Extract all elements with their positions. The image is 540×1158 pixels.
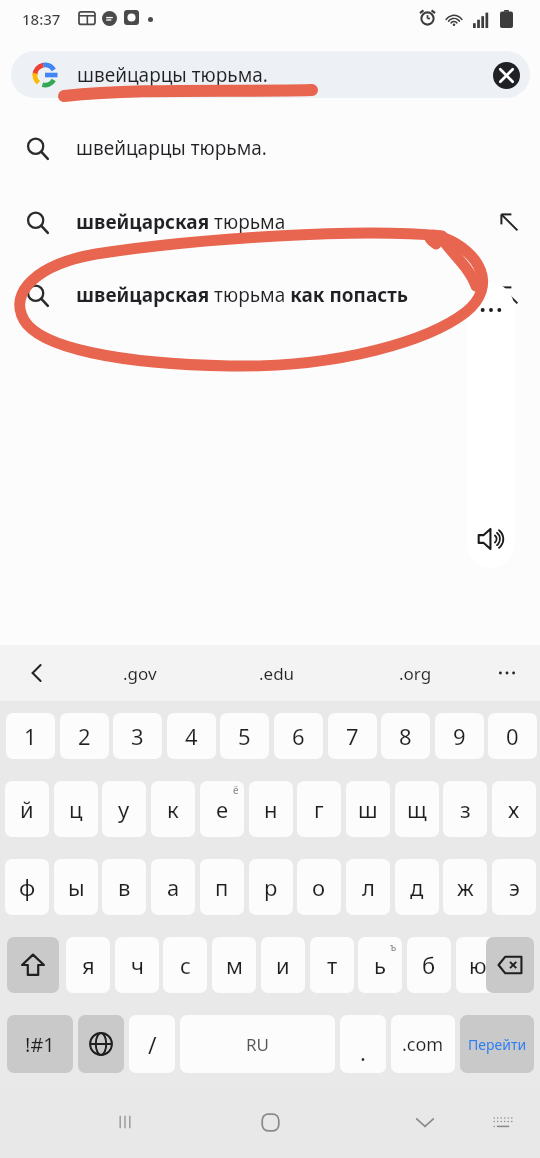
button[interactable]: 5 xyxy=(220,713,269,759)
staticText: ф xyxy=(19,872,36,902)
button[interactable]: More options xyxy=(467,283,514,568)
staticText: а xyxy=(167,872,180,902)
button[interactable]: е xyxy=(200,781,244,837)
button[interactable]: Insert suggestion xyxy=(492,205,526,239)
button[interactable]: Shift xyxy=(7,937,59,993)
button[interactable]: Backspace xyxy=(486,937,534,993)
staticText: !#1 xyxy=(25,1031,55,1058)
button[interactable]: 1 xyxy=(6,713,55,759)
button[interactable]: к xyxy=(151,781,195,837)
button[interactable]: Back xyxy=(12,645,62,701)
staticText: ы xyxy=(68,872,85,902)
button[interactable]: RU xyxy=(180,1015,335,1073)
button[interactable]: в xyxy=(102,859,146,915)
staticText: т xyxy=(327,950,338,980)
staticText: швейцарцы тюрьма. xyxy=(77,62,268,88)
staticText: р xyxy=(264,872,278,902)
staticText: 8 xyxy=(399,721,412,751)
staticText: .edu xyxy=(259,662,295,685)
button[interactable]: д xyxy=(395,859,439,915)
button[interactable]: Change language xyxy=(78,1015,124,1073)
button[interactable]: э xyxy=(492,859,536,915)
button[interactable]: ж xyxy=(443,859,487,915)
button[interactable]: Home xyxy=(245,1086,295,1158)
button[interactable]: ч xyxy=(115,937,159,993)
button[interactable]: Hide keyboard xyxy=(400,1086,450,1158)
button[interactable]: 8 xyxy=(381,713,430,759)
button[interactable]: швейцарцы тюрьма. xyxy=(11,51,530,98)
button[interactable]: More xyxy=(486,645,528,701)
button[interactable]: швейцарская тюрьма xyxy=(0,198,540,246)
staticText: к xyxy=(167,794,179,824)
button[interactable]: п xyxy=(200,859,244,915)
staticText: о xyxy=(312,872,326,902)
button[interactable]: ю xyxy=(456,937,500,993)
button[interactable]: Volume xyxy=(472,520,510,558)
button[interactable]: о xyxy=(297,859,341,915)
button[interactable]: 0 xyxy=(488,713,537,759)
button[interactable]: ь xyxy=(358,937,402,993)
button[interactable]: / xyxy=(129,1015,175,1073)
staticText: 1 xyxy=(24,721,37,751)
staticText: швейцарская тюрьма xyxy=(76,209,286,235)
staticText: в xyxy=(118,872,131,902)
button[interactable]: ы xyxy=(54,859,98,915)
staticText: э xyxy=(509,872,520,902)
staticText: .com xyxy=(402,1032,444,1057)
button[interactable]: р xyxy=(249,859,293,915)
button[interactable]: н xyxy=(249,781,293,837)
staticText: у xyxy=(118,794,130,824)
staticText: ё xyxy=(233,783,239,797)
staticText: щ xyxy=(407,794,427,824)
staticText: 18:37 xyxy=(22,9,61,29)
staticText: ш xyxy=(358,794,378,824)
button[interactable]: 7 xyxy=(328,713,377,759)
button[interactable]: й xyxy=(5,781,49,837)
button[interactable]: б xyxy=(407,937,451,993)
staticText: д xyxy=(410,872,424,902)
button[interactable]: .edu xyxy=(247,645,307,701)
button[interactable]: . xyxy=(340,1015,386,1073)
button[interactable]: у xyxy=(102,781,146,837)
staticText: 2 xyxy=(78,721,91,751)
button[interactable]: 2 xyxy=(60,713,109,759)
button[interactable]: щ xyxy=(395,781,439,837)
button[interactable]: Insert suggestion xyxy=(492,278,526,312)
button[interactable]: ш xyxy=(346,781,390,837)
button[interactable]: Clear xyxy=(489,58,523,92)
button[interactable]: .org xyxy=(385,645,445,701)
staticText: с xyxy=(180,950,191,980)
button[interactable]: т xyxy=(310,937,354,993)
button[interactable]: Keyboard layout xyxy=(480,1086,526,1158)
button[interactable]: с xyxy=(163,937,207,993)
staticText: н xyxy=(264,794,278,824)
button[interactable]: х xyxy=(492,781,536,837)
button[interactable]: 6 xyxy=(274,713,323,759)
button[interactable]: Перейти xyxy=(460,1015,534,1073)
button[interactable]: .com xyxy=(391,1015,455,1073)
staticText: е xyxy=(216,794,229,824)
button[interactable]: я xyxy=(66,937,110,993)
button[interactable]: 9 xyxy=(435,713,484,759)
staticText: ц xyxy=(69,794,83,824)
button[interactable]: ц xyxy=(54,781,98,837)
staticText: / xyxy=(148,1029,157,1060)
button[interactable]: швейцарская тюрьма как попасть xyxy=(0,271,540,319)
staticText: ж xyxy=(457,872,474,902)
button[interactable]: швейцарцы тюрьма. xyxy=(0,124,540,172)
staticText: х xyxy=(508,794,520,824)
button[interactable]: а xyxy=(151,859,195,915)
button[interactable]: г xyxy=(297,781,341,837)
button[interactable]: ф xyxy=(5,859,49,915)
button[interactable]: 3 xyxy=(113,713,162,759)
button[interactable]: м xyxy=(212,937,256,993)
button[interactable]: .gov xyxy=(110,645,170,701)
button[interactable]: !#1 xyxy=(7,1015,73,1073)
button[interactable]: 4 xyxy=(167,713,216,759)
button[interactable]: з xyxy=(443,781,487,837)
button[interactable]: и xyxy=(261,937,305,993)
button[interactable]: Recents xyxy=(100,1086,150,1158)
button[interactable]: More options xyxy=(473,292,509,328)
staticText: й xyxy=(20,794,34,824)
button[interactable]: л xyxy=(346,859,390,915)
